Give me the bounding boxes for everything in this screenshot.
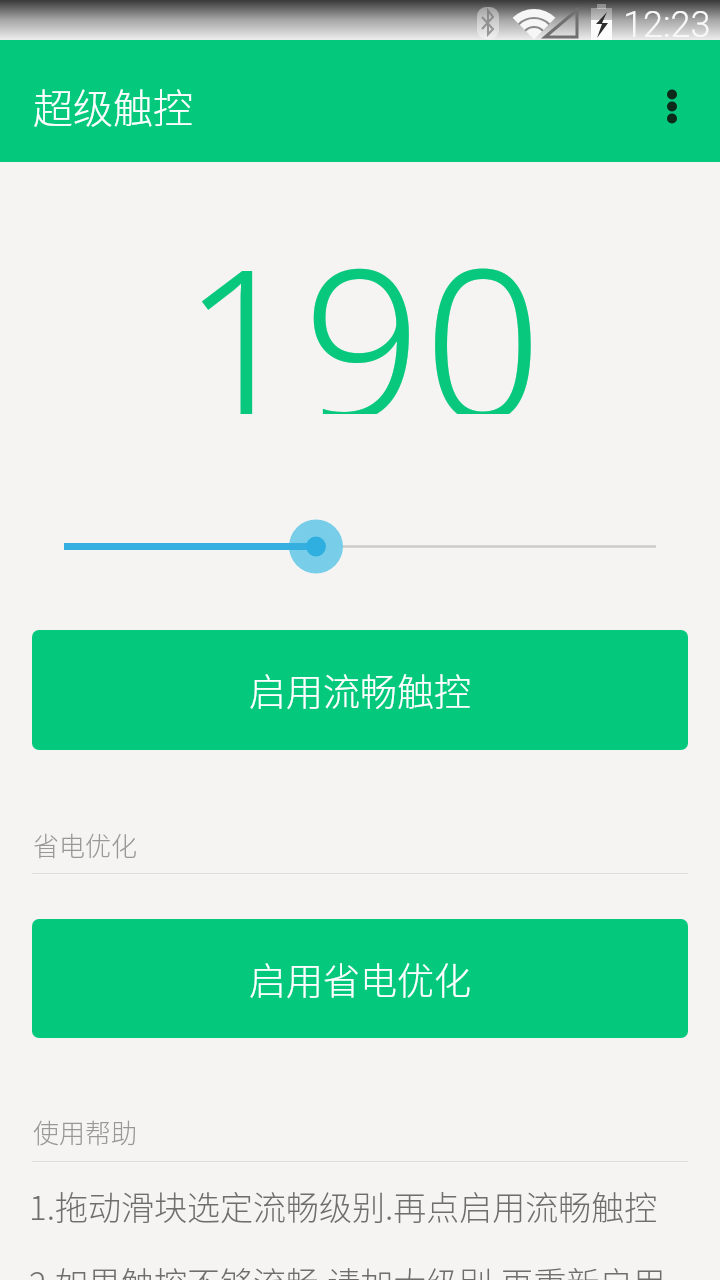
staticText: 省电优化 <box>33 826 138 864</box>
staticText: 使用帮助 <box>33 1113 138 1151</box>
button[interactable]: 启用流畅触控 <box>32 630 688 750</box>
staticText: 1.拖动滑块选定流畅级别.再点启用流畅触控 <box>29 1182 658 1230</box>
button[interactable]: 流畅级别滑块 <box>0 510 720 582</box>
staticText: 190 <box>182 198 545 414</box>
staticText: 启用省电优化 <box>249 952 471 1006</box>
staticText: 2.如果触控不够流畅.请加大级别.再重新启用 <box>29 1258 666 1280</box>
staticText: 超级触控 <box>33 77 193 135</box>
staticText: 12:23 <box>623 4 711 44</box>
staticText: 启用流畅触控 <box>249 663 471 717</box>
button[interactable]: 启用省电优化 <box>32 919 688 1038</box>
button[interactable]: More options <box>648 77 696 125</box>
